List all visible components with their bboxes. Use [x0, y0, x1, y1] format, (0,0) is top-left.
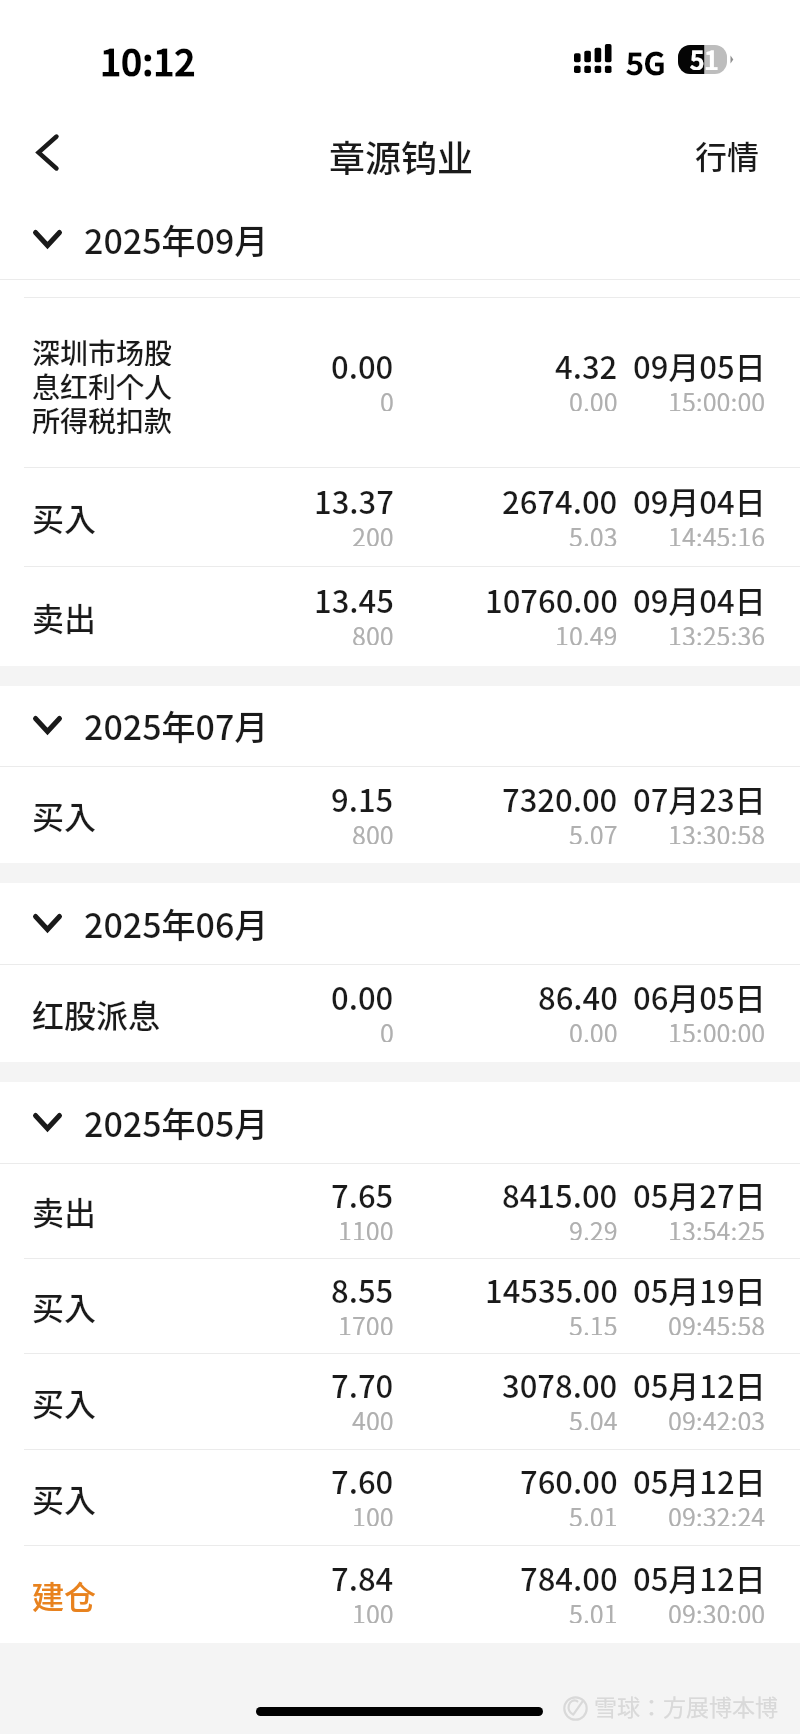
staticText: 800	[352, 816, 394, 844]
staticText: 雪球：方展博本博	[594, 1689, 778, 1722]
staticText: 7.60	[331, 1458, 394, 1498]
staticText: 09月04日	[633, 478, 766, 518]
staticText: 14535.00	[485, 1267, 618, 1307]
staticText: 所得税扣款	[32, 400, 173, 434]
staticText: 86.40	[538, 974, 618, 1014]
staticText: 5.01	[569, 1498, 618, 1526]
staticText: 1700	[338, 1307, 394, 1335]
staticText: 0.00	[569, 383, 618, 411]
staticText: 13:25:36	[668, 617, 766, 645]
staticText: 05月12日	[633, 1458, 766, 1498]
staticText: 买入	[32, 1283, 97, 1329]
staticText: 5.01	[569, 1595, 618, 1623]
staticText: 784.00	[520, 1555, 618, 1595]
staticText: 13.37	[314, 478, 394, 518]
button[interactable]: 行情	[665, 100, 800, 190]
button[interactable]: 2025年09月	[0, 190, 800, 279]
staticText: 05月12日	[633, 1362, 766, 1402]
staticText: 06月05日	[633, 974, 766, 1014]
staticText: 2025年06月	[84, 899, 269, 948]
staticText: 10:12	[100, 33, 196, 87]
staticText: 7.65	[331, 1172, 394, 1212]
button[interactable]: 买入	[0, 767, 800, 863]
staticText: 15:00:00	[668, 1014, 766, 1042]
button[interactable]: 2025年07月	[0, 686, 800, 766]
staticText: 07月23日	[633, 776, 766, 816]
staticText: 05月19日	[633, 1267, 766, 1307]
staticText: 5.03	[569, 518, 618, 546]
staticText: 0.00	[331, 343, 394, 383]
staticText: 2025年05月	[84, 1098, 269, 1147]
staticText: 卖出	[32, 594, 97, 640]
button[interactable]: 卖出	[0, 1164, 800, 1258]
staticText: 买入	[32, 792, 97, 838]
staticText: 10760.00	[485, 577, 618, 617]
staticText: 2025年07月	[84, 701, 269, 750]
staticText: 13:54:25	[668, 1212, 766, 1240]
staticText: 09月04日	[633, 577, 766, 617]
staticText: 5G	[626, 39, 666, 84]
staticText: 5.04	[569, 1402, 618, 1430]
staticText: 章源钨业	[329, 130, 474, 182]
staticText: 14:45:16	[668, 518, 766, 546]
staticText: 买入	[32, 494, 97, 540]
staticText: 13:30:58	[668, 816, 766, 844]
staticText: 行情	[695, 132, 760, 178]
staticText: 09月05日	[633, 343, 766, 383]
staticText: 5.15	[569, 1307, 618, 1335]
staticText: 0.00	[331, 974, 394, 1014]
staticText: 09:30:00	[668, 1595, 766, 1623]
staticText: 10.49	[555, 617, 618, 645]
staticText: 09:32:24	[668, 1498, 766, 1526]
staticText: 400	[352, 1402, 394, 1430]
staticText: 2025年09月	[84, 215, 269, 264]
staticText: 3078.00	[502, 1362, 618, 1402]
button[interactable]: 买入	[0, 468, 800, 566]
staticText: 0.00	[569, 1014, 618, 1042]
staticText: 0	[380, 1014, 394, 1042]
staticText: 51	[690, 41, 719, 70]
staticText: 100	[352, 1595, 394, 1623]
button[interactable]: 深圳市场股	[0, 298, 800, 467]
staticText: 买入	[32, 1379, 97, 1425]
staticText: 1100	[338, 1212, 394, 1240]
button[interactable]: 买入	[0, 1354, 800, 1449]
staticText: 100	[352, 1498, 394, 1526]
staticText: 05月27日	[633, 1172, 766, 1212]
staticText: 卖出	[32, 1188, 97, 1234]
staticText: 09:45:58	[668, 1307, 766, 1335]
staticText: 0	[380, 383, 394, 411]
staticText: 8.55	[331, 1267, 394, 1307]
staticText: 09:42:03	[668, 1402, 766, 1430]
staticText: 15:00:00	[668, 383, 766, 411]
staticText: 7.84	[331, 1555, 394, 1595]
button[interactable]: 建仓	[0, 1546, 800, 1643]
staticText: 建仓	[32, 1572, 97, 1618]
staticText: 红股派息	[32, 991, 161, 1037]
staticText: 800	[352, 617, 394, 645]
button[interactable]: 2025年05月	[0, 1082, 800, 1163]
staticText: 8415.00	[502, 1172, 618, 1212]
staticText: 200	[352, 518, 394, 546]
staticText: 深圳市场股	[32, 332, 173, 366]
staticText: 买入	[32, 1475, 97, 1521]
staticText: 2674.00	[502, 478, 618, 518]
button[interactable]: Back	[0, 100, 96, 190]
button[interactable]: 红股派息	[0, 965, 800, 1062]
staticText: 760.00	[520, 1458, 618, 1498]
staticText: 息红利个人	[32, 366, 173, 400]
staticText: 4.32	[555, 343, 618, 383]
staticText: 13.45	[314, 577, 394, 617]
staticText: 9.29	[569, 1212, 618, 1240]
button[interactable]: 卖出	[0, 567, 800, 666]
staticText: 05月12日	[633, 1555, 766, 1595]
staticText: 5.07	[569, 816, 618, 844]
staticText: 7.70	[331, 1362, 394, 1402]
button[interactable]: 买入	[0, 1450, 800, 1545]
staticText: 9.15	[331, 776, 394, 816]
staticText: 7320.00	[502, 776, 618, 816]
button[interactable]: 买入	[0, 1259, 800, 1353]
button[interactable]: 2025年06月	[0, 883, 800, 964]
